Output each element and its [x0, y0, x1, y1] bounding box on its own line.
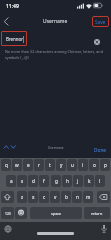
button[interactable]: x: [28, 191, 38, 203]
button[interactable]: d: [28, 175, 38, 187]
staticText: s: [21, 178, 24, 184]
button[interactable]: f: [39, 175, 49, 187]
button[interactable]: y: [56, 159, 66, 171]
button[interactable]: [1, 191, 14, 203]
staticText: Brennon: [6, 36, 24, 42]
staticText: g: [55, 178, 58, 184]
staticText: c: [43, 194, 46, 200]
button[interactable]: s: [17, 175, 27, 187]
button[interactable]: Save: [92, 16, 109, 27]
staticText: No more than 32 characters among Chinese…: [5, 49, 103, 54]
button[interactable]: [94, 39, 100, 45]
button[interactable]: a: [6, 175, 16, 187]
button[interactable]: q: [1, 159, 11, 171]
staticText: return: [91, 211, 103, 216]
staticText: m: [86, 194, 91, 200]
staticText: Username: [48, 146, 64, 150]
button[interactable]: g: [51, 175, 61, 187]
staticText: e: [27, 162, 30, 168]
staticText: b: [65, 194, 68, 200]
button[interactable]: r: [34, 159, 44, 171]
button[interactable]: i: [78, 159, 88, 171]
staticText: 11:49: [6, 3, 19, 10]
button[interactable]: e: [23, 159, 33, 171]
staticText: k: [88, 178, 91, 184]
staticText: 123: [5, 211, 11, 215]
staticText: f: [43, 178, 45, 184]
button[interactable]: p: [100, 159, 110, 171]
button[interactable]: [15, 207, 27, 219]
staticText: p: [104, 162, 107, 168]
staticText: Username: [43, 18, 68, 25]
button[interactable]: [3, 144, 17, 150]
staticText: l: [99, 178, 101, 184]
button[interactable]: v: [50, 191, 60, 203]
staticText: x: [32, 194, 35, 200]
button[interactable]: o: [89, 159, 99, 171]
staticText: h: [66, 178, 69, 184]
button[interactable]: Done: [92, 145, 109, 155]
staticText: n: [76, 194, 79, 200]
staticText: r: [38, 162, 40, 168]
staticText: a: [10, 178, 13, 184]
button[interactable]: k: [84, 175, 94, 187]
button[interactable]: space: [30, 207, 82, 219]
staticText: v: [54, 194, 57, 200]
button[interactable]: m: [83, 191, 93, 203]
button[interactable]: 123: [1, 207, 14, 219]
button[interactable]: [4, 225, 12, 233]
button[interactable]: b: [61, 191, 71, 203]
button[interactable]: w: [12, 159, 22, 171]
button[interactable]: l: [95, 175, 105, 187]
button[interactable]: [97, 191, 110, 203]
staticText: symbols (_-@): [5, 55, 29, 60]
staticText: o: [93, 162, 96, 168]
staticText: q: [5, 162, 8, 168]
button[interactable]: c: [39, 191, 49, 203]
button[interactable]: n: [72, 191, 82, 203]
button[interactable]: Brennon: [1, 31, 27, 46]
staticText: Save: [95, 19, 106, 25]
staticText: d: [32, 178, 35, 184]
staticText: j: [77, 178, 79, 184]
button[interactable]: t: [45, 159, 55, 171]
staticText: w: [15, 162, 19, 168]
button[interactable]: return: [84, 207, 110, 219]
staticText: t: [49, 162, 51, 168]
staticText: space: [51, 211, 62, 216]
staticText: Done: [94, 147, 107, 154]
button[interactable]: u: [67, 159, 77, 171]
button[interactable]: z: [17, 191, 27, 203]
staticText: i: [82, 162, 84, 168]
staticText: y: [60, 162, 63, 168]
button[interactable]: j: [73, 175, 83, 187]
button[interactable]: [3, 17, 10, 26]
button[interactable]: [100, 224, 108, 234]
staticText: z: [21, 194, 24, 200]
staticText: u: [71, 162, 74, 168]
button[interactable]: h: [62, 175, 72, 187]
